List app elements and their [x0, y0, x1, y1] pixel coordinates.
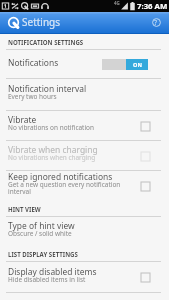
- button[interactable]: Notification interval: [0, 79, 169, 111]
- button[interactable]: Notifications: [0, 50, 169, 79]
- staticText: Notification interval: [8, 83, 87, 95]
- button[interactable]: Checkbox, unchecked: [137, 148, 153, 164]
- button[interactable]: Type of hint view: [0, 217, 169, 246]
- staticText: Vibrate: [8, 114, 37, 126]
- staticText: Obscure / solid white: [8, 229, 72, 238]
- staticText: 4G: [114, 0, 120, 6]
- button[interactable]: Display disabled items: [0, 262, 169, 293]
- staticText: Get a new question every notification in…: [8, 180, 132, 196]
- button[interactable]: Checkbox, unchecked: [137, 269, 153, 285]
- staticText: Keep ignored notifications: [8, 171, 113, 183]
- button[interactable]: Checkbox, unchecked: [137, 178, 153, 194]
- button[interactable]: Vibrate when charging: [0, 141, 169, 171]
- button[interactable]: Keep ignored notifications: [0, 171, 169, 201]
- staticText: ?: [154, 18, 158, 28]
- staticText: ON: [133, 61, 142, 68]
- button[interactable]: Help: [145, 12, 167, 33]
- staticText: Notifications: [8, 57, 59, 69]
- staticText: Every two hours: [8, 92, 57, 101]
- staticText: Display disabled items: [8, 266, 97, 278]
- button[interactable]: Checkbox, unchecked: [137, 118, 153, 134]
- staticText: 7:36 AM: [137, 1, 168, 12]
- staticText: Vibrate when charging: [8, 144, 98, 156]
- staticText: No vibrations when charging: [8, 153, 96, 162]
- staticText: NOTIFICATION SETTINGS: [8, 38, 84, 46]
- staticText: Settings: [22, 15, 61, 29]
- staticText: HINT VIEW: [8, 205, 41, 213]
- staticText: Type of hint view: [8, 220, 75, 232]
- button[interactable]: Vibrate: [0, 111, 169, 141]
- button[interactable]: Notifications on: [102, 59, 148, 70]
- staticText: LIST DISPLAY SETTINGS: [8, 250, 78, 258]
- staticText: Hide disabled items in list: [8, 275, 86, 284]
- staticText: No vibrations on notification: [8, 123, 94, 132]
